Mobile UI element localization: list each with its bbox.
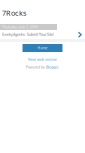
button[interactable]: Blogger. (46, 65, 59, 69)
button[interactable]: Home (22, 44, 62, 52)
button[interactable]: Geeky4geeks: Submit Your Site! (0, 30, 85, 39)
staticText: View web version (28, 57, 57, 62)
staticText: Blogger. (46, 65, 59, 69)
staticText: Home (37, 46, 47, 50)
staticText: 7Rocks (2, 8, 27, 18)
staticText: Thursday, July 2, 2009 (2, 25, 38, 29)
button[interactable]: View web version (28, 57, 57, 62)
staticText: Geeky4geeks: Submit Your Site! (2, 32, 54, 37)
staticText: Powered by (26, 65, 45, 69)
